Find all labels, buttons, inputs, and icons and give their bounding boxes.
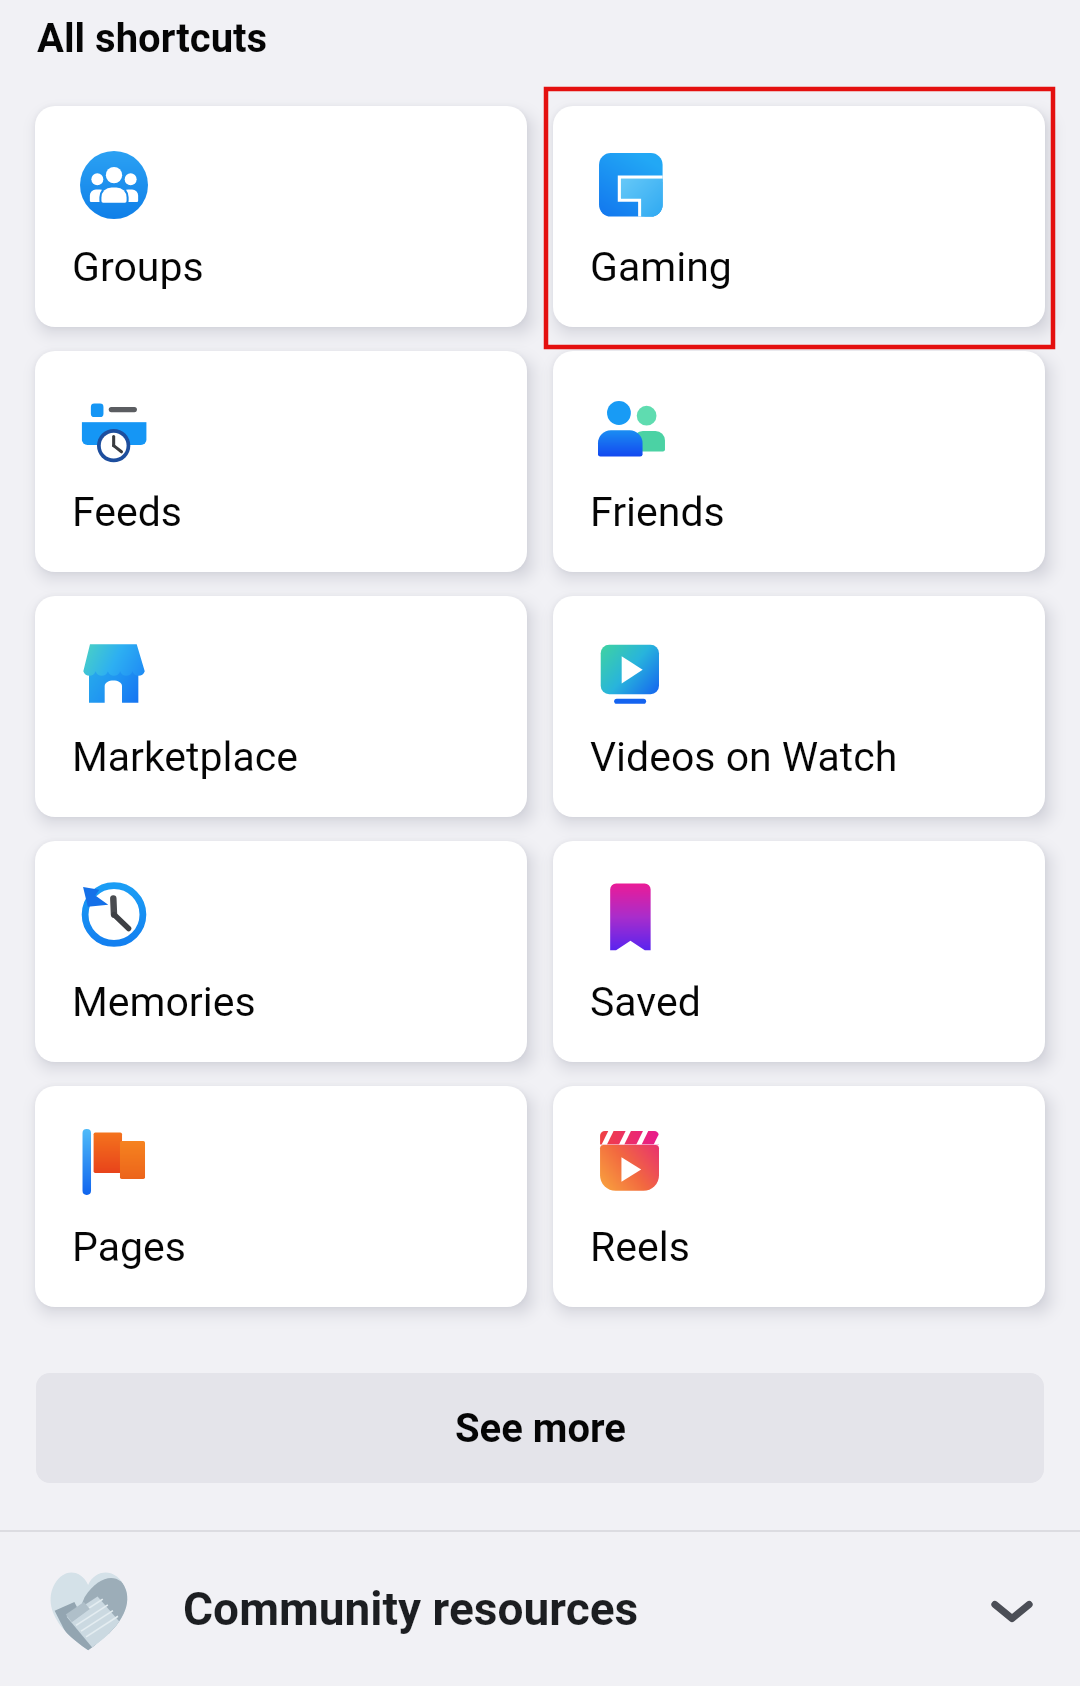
button[interactable]: Community resources (0, 1532, 1080, 1686)
staticText: Saved (590, 978, 701, 1026)
staticText: Reels (590, 1223, 690, 1271)
button[interactable]: Friends (553, 351, 1045, 572)
staticText: Pages (72, 1223, 186, 1271)
button[interactable]: See more (36, 1373, 1044, 1483)
staticText: Marketplace (72, 733, 299, 781)
button[interactable]: Saved (553, 841, 1045, 1062)
staticText: Videos on Watch (590, 733, 898, 781)
staticText: Friends (590, 488, 725, 536)
staticText: See more (455, 1405, 626, 1452)
staticText: Gaming (590, 243, 732, 291)
staticText: Feeds (72, 488, 183, 536)
button[interactable]: Memories (35, 841, 527, 1062)
staticText: Community resources (183, 1582, 639, 1636)
staticText: Memories (72, 978, 256, 1026)
button[interactable]: Videos on Watch (553, 596, 1045, 817)
staticText: Groups (72, 243, 204, 291)
button[interactable]: Gaming (553, 106, 1045, 327)
other: Expand Community resources (982, 1579, 1042, 1639)
staticText: All shortcuts (37, 15, 268, 62)
button[interactable]: Feeds (35, 351, 527, 572)
button[interactable]: Pages (35, 1086, 527, 1307)
button[interactable]: Reels (553, 1086, 1045, 1307)
button[interactable]: Groups (35, 106, 527, 327)
button[interactable]: Marketplace (35, 596, 527, 817)
